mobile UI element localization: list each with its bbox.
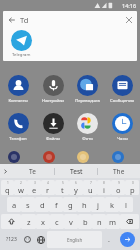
button[interactable]: Enter (115, 231, 139, 248)
button[interactable]: Shift (1, 214, 21, 229)
button[interactable]: Контакты (2, 75, 34, 104)
button[interactable]: More suggestions (0, 164, 11, 178)
button[interactable]: Настройки (37, 75, 69, 104)
button[interactable]: Часы (106, 113, 138, 142)
button[interactable]: 5 (55, 180, 69, 195)
button[interactable]: Back (3, 11, 20, 28)
staticText: f (55, 200, 58, 210)
staticText: v (69, 217, 73, 227)
button[interactable]: Emoji (21, 231, 34, 248)
staticText: 0 (132, 181, 134, 185)
button[interactable]: v (64, 214, 78, 229)
staticText: 7 (90, 181, 92, 185)
staticText: Контакты (8, 98, 28, 104)
button[interactable]: Сообщения (106, 75, 138, 104)
button[interactable]: Переводчик (71, 75, 103, 104)
button[interactable]: Clear (120, 11, 137, 28)
staticText: x (41, 217, 45, 227)
button[interactable]: Backspace (120, 214, 139, 229)
button[interactable] (106, 151, 138, 163)
button[interactable]: s (21, 197, 35, 212)
staticText: . (108, 235, 110, 245)
staticText: h (82, 200, 87, 210)
button[interactable]: Файлы (37, 113, 69, 142)
button[interactable]: g (63, 197, 77, 212)
staticText: b (83, 217, 88, 227)
staticText: s (26, 200, 30, 210)
button[interactable]: 2 (14, 180, 27, 195)
button[interactable]: k (105, 197, 119, 212)
button[interactable]: ?123 (1, 231, 21, 248)
staticText: 6 (75, 181, 77, 185)
staticText: 9 (118, 181, 120, 185)
button[interactable]: l (119, 197, 133, 212)
button[interactable]: b (78, 214, 92, 229)
button[interactable]: f (49, 197, 63, 212)
staticText: m (109, 217, 117, 227)
button[interactable]: English (47, 231, 102, 248)
button[interactable]: d (35, 197, 49, 212)
button[interactable]: m (106, 214, 120, 229)
staticText: Te (29, 167, 36, 176)
staticText: 1 (7, 181, 9, 185)
button[interactable]: j (91, 197, 105, 212)
button[interactable]: 0 (125, 180, 139, 195)
staticText: z (27, 217, 31, 227)
button[interactable]: 1 (1, 180, 14, 195)
staticText: 3 (34, 181, 36, 185)
staticText: Телефон (9, 136, 27, 142)
staticText: ?123 (6, 236, 17, 243)
staticText: The (113, 167, 125, 176)
staticText: c (55, 217, 59, 227)
button[interactable]: Te (11, 164, 54, 178)
button[interactable]: h (77, 197, 91, 212)
button[interactable]: 8 (97, 180, 111, 195)
staticText: Переводчик (75, 98, 100, 104)
staticText: r (46, 185, 50, 195)
staticText: y (74, 185, 78, 195)
button[interactable]: 4 (41, 180, 55, 195)
staticText: Фото (82, 136, 93, 142)
staticText: e (32, 185, 37, 195)
button[interactable]: Фото (71, 113, 103, 142)
staticText: Настройки (42, 98, 64, 104)
button[interactable]: Change language (34, 231, 47, 248)
staticText: p (130, 185, 135, 195)
staticText: 14:16 (122, 2, 137, 9)
staticText: 8 (103, 181, 105, 185)
staticText: g (68, 200, 73, 210)
staticText: a (12, 200, 17, 210)
staticText: l (125, 200, 127, 210)
button[interactable]: The (98, 164, 140, 178)
button[interactable]: n (92, 214, 106, 229)
button[interactable]: Telegram (3, 28, 137, 61)
button[interactable] (2, 151, 34, 163)
staticText: u (88, 185, 93, 195)
staticText: Td (20, 15, 29, 25)
button[interactable]: Back (3, 11, 137, 28)
staticText: 5 (62, 181, 64, 185)
button[interactable]: a (7, 197, 21, 212)
button[interactable]: Test (55, 164, 97, 178)
button[interactable]: . (102, 231, 115, 248)
staticText: Часы (117, 136, 128, 142)
button[interactable]: 3 (27, 180, 41, 195)
button[interactable]: 9 (111, 180, 125, 195)
button[interactable] (37, 151, 69, 163)
button[interactable] (71, 151, 103, 163)
staticText: k (110, 200, 115, 210)
button[interactable]: x (36, 214, 50, 229)
staticText: Test (70, 167, 83, 176)
staticText: 4 (47, 181, 49, 185)
button[interactable]: c (50, 214, 64, 229)
staticText: j (97, 200, 99, 210)
staticText: q (5, 185, 10, 195)
staticText: 2 (20, 181, 22, 185)
button[interactable]: 6 (69, 180, 83, 195)
button[interactable]: 7 (83, 180, 97, 195)
staticText: Telegram (12, 52, 31, 58)
staticText: o (116, 185, 121, 195)
button[interactable]: Телефон (2, 113, 34, 142)
button[interactable]: z (21, 214, 36, 229)
staticText: English (67, 237, 83, 243)
